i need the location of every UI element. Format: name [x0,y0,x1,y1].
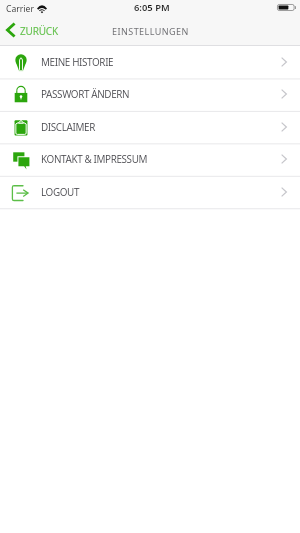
button[interactable]: LOGOUT [0,176,300,208]
staticText: 6:05 PM [134,1,170,14]
staticText: LOGOUT [41,185,80,198]
button[interactable]: PASSWORT ÄNDERN [0,78,300,110]
staticText: MEINE HISTORIE [41,55,114,68]
button[interactable]: DISCLAIMER [0,111,300,143]
staticText: ZURÜCK [20,24,58,38]
staticText: EINSTELLUNGEN [112,25,189,37]
staticText: PASSWORT ÄNDERN [41,87,130,100]
staticText: KONTAKT & IMPRESSUM [41,152,148,165]
button[interactable]: MEINE HISTORIE [0,46,300,78]
staticText: DISCLAIMER [41,120,95,133]
staticText: Carrier [6,3,34,15]
button[interactable]: Zurück [0,21,68,41]
button[interactable]: KONTAKT & IMPRESSUM [0,143,300,175]
